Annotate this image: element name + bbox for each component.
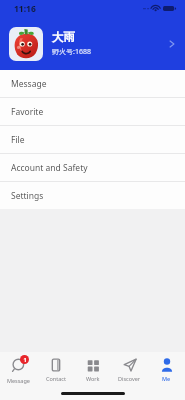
staticText: Me [162, 375, 171, 382]
staticText: 野火号:1688 [52, 47, 91, 57]
staticText: File [11, 134, 25, 146]
button[interactable]: Avatar [0, 17, 185, 70]
staticText: Discover [118, 375, 141, 382]
other: Open profile [169, 39, 175, 49]
button[interactable]: Contact [37, 357, 74, 382]
staticText: Contact [46, 375, 66, 382]
button[interactable]: File [0, 126, 185, 153]
button[interactable]: Message [0, 70, 185, 97]
staticText: 11:16 [14, 3, 36, 15]
button[interactable]: Avatar [9, 27, 43, 61]
button[interactable]: Account and Safety [0, 154, 185, 181]
staticText: Favorite [11, 106, 44, 118]
button[interactable]: Discover [111, 357, 148, 382]
button[interactable]: Favorite [0, 98, 185, 125]
staticText: Message [11, 78, 47, 90]
button[interactable]: Work [74, 357, 111, 382]
staticText: Account and Safety [11, 162, 88, 174]
button[interactable]: Settings [0, 182, 185, 209]
button[interactable]: Message [0, 355, 37, 384]
staticText: Work [86, 375, 100, 382]
staticText: 1 [23, 356, 27, 363]
staticText: Message [7, 377, 30, 384]
staticText: 大雨 [52, 30, 75, 44]
staticText: Settings [11, 190, 44, 202]
button[interactable]: Me [148, 357, 185, 382]
